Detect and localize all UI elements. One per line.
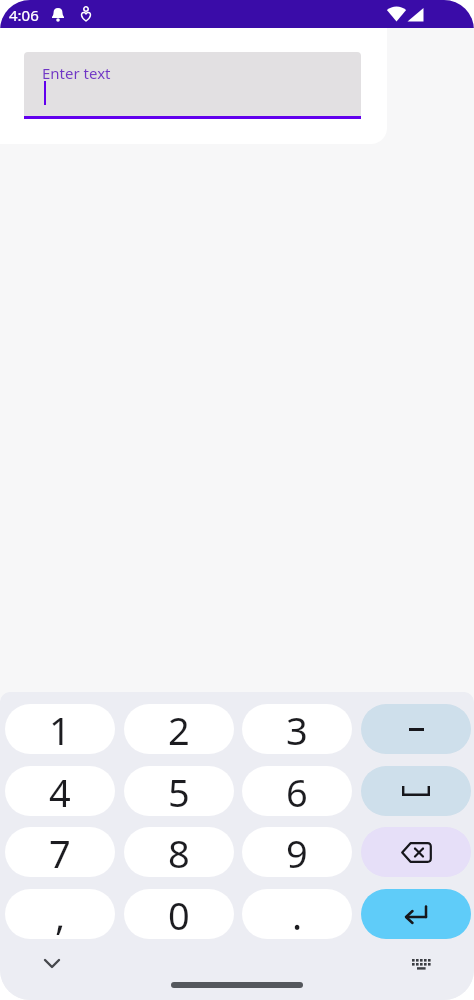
button[interactable] [361,827,471,877]
staticText: 5 [168,766,190,816]
staticText: 7 [49,827,71,877]
button[interactable]: . [242,889,352,939]
button[interactable] [361,704,471,754]
button[interactable]: Enter text [24,52,361,119]
staticText: 4:06 [9,5,39,25]
staticText: 3 [286,704,308,754]
button[interactable]: 8 [124,827,234,877]
button[interactable] [36,950,68,978]
staticText: 8 [168,827,190,877]
staticText: 4 [49,766,71,816]
button[interactable]: 1 [5,704,115,754]
staticText: 2 [168,704,190,754]
staticText: 9 [286,827,308,877]
button[interactable] [405,950,437,978]
button[interactable]: 7 [5,827,115,877]
button[interactable]: 0 [124,889,234,939]
button[interactable] [361,889,471,939]
staticText: . [292,889,303,939]
staticText: , [55,889,66,939]
button[interactable]: 6 [242,766,352,816]
staticText: 0 [168,889,190,939]
button[interactable]: 3 [242,704,352,754]
button[interactable]: 9 [242,827,352,877]
button[interactable] [361,766,471,816]
button[interactable]: 5 [124,766,234,816]
staticText: Enter text [42,63,111,83]
staticText: 1 [49,704,71,754]
staticText: 6 [286,766,308,816]
button[interactable]: 2 [124,704,234,754]
button[interactable]: , [5,889,115,939]
button[interactable]: 4 [5,766,115,816]
